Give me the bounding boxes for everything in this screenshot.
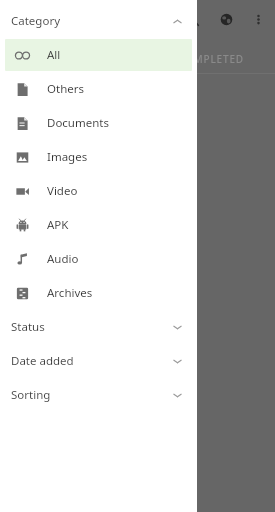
button[interactable]: Audio <box>5 243 192 275</box>
button[interactable]: Date added <box>0 344 197 378</box>
button[interactable]: APK <box>5 209 192 241</box>
button[interactable]: Documents <box>5 107 192 139</box>
button[interactable]: Archives <box>5 277 192 309</box>
staticText: Others <box>47 81 84 97</box>
staticText: Status <box>11 319 45 335</box>
staticText: Images <box>47 149 88 165</box>
staticText: Date added <box>11 353 74 369</box>
staticText: Archives <box>47 285 93 301</box>
button[interactable]: Video <box>5 175 192 207</box>
button[interactable]: Images <box>5 141 192 173</box>
staticText: Documents <box>47 115 109 131</box>
staticText: Sorting <box>11 387 51 403</box>
staticText: Video <box>47 183 78 199</box>
button[interactable]: Search <box>175 2 209 36</box>
button[interactable]: Browser <box>209 2 243 36</box>
button[interactable]: All <box>5 39 192 71</box>
button[interactable]: Others <box>5 73 192 105</box>
button[interactable]: Category <box>0 4 197 38</box>
button[interactable]: Status <box>0 310 197 344</box>
staticText: All <box>47 47 61 63</box>
staticText: Category <box>11 13 61 29</box>
staticText: COMPLETED <box>178 52 244 66</box>
button[interactable]: Sorting <box>0 378 197 412</box>
button[interactable]: More options <box>243 4 273 34</box>
staticText: Audio <box>47 251 79 267</box>
staticText: APK <box>47 217 69 233</box>
